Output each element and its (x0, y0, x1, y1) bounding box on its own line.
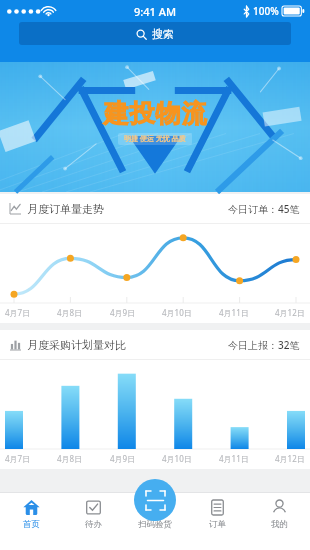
staticText: 4月8日 (57, 453, 83, 464)
staticText: 100% (253, 4, 279, 18)
staticText: 4月10日 (162, 453, 192, 464)
staticText: 4月9日 (110, 453, 136, 464)
button[interactable]: 建投物流 (0, 62, 310, 192)
button[interactable]: 订单 (186, 493, 248, 550)
staticText: 今日订单：45笔 (228, 202, 300, 216)
staticText: 我的 (271, 519, 288, 530)
staticText: 建投物流 (103, 98, 207, 129)
button[interactable]: 待办 (62, 493, 124, 550)
staticText: 月度订单量走势 (27, 202, 104, 216)
staticText: 4月12日 (275, 307, 305, 318)
staticText: 4月7日 (5, 307, 31, 318)
staticText: 4月10日 (162, 307, 192, 318)
staticText: 4月8日 (57, 307, 83, 318)
staticText: 9:41 AM (134, 4, 177, 19)
staticText: 订单 (209, 519, 226, 530)
button[interactable]: 扫码验货 (124, 493, 186, 550)
button[interactable]: 我的 (248, 493, 310, 550)
staticText: 月度采购计划量对比 (27, 338, 126, 352)
staticText: 待办 (85, 519, 102, 530)
staticText: 扫码验货 (138, 519, 172, 530)
staticText: 首页 (23, 519, 40, 530)
staticText: 4月7日 (5, 453, 31, 464)
staticText: 4月11日 (219, 453, 249, 464)
button[interactable]: 扫码验货 (134, 479, 176, 521)
staticText: 4月12日 (275, 453, 305, 464)
staticText: 明捷 便运 无忧 品质 (124, 134, 186, 144)
staticText: 4月11日 (219, 307, 249, 318)
staticText: 今日上报：32笔 (228, 338, 300, 352)
staticText: 4月9日 (110, 307, 136, 318)
staticText: 搜索 (152, 27, 174, 41)
button[interactable]: 搜索 (19, 22, 291, 45)
button[interactable]: 首页 (0, 493, 62, 550)
